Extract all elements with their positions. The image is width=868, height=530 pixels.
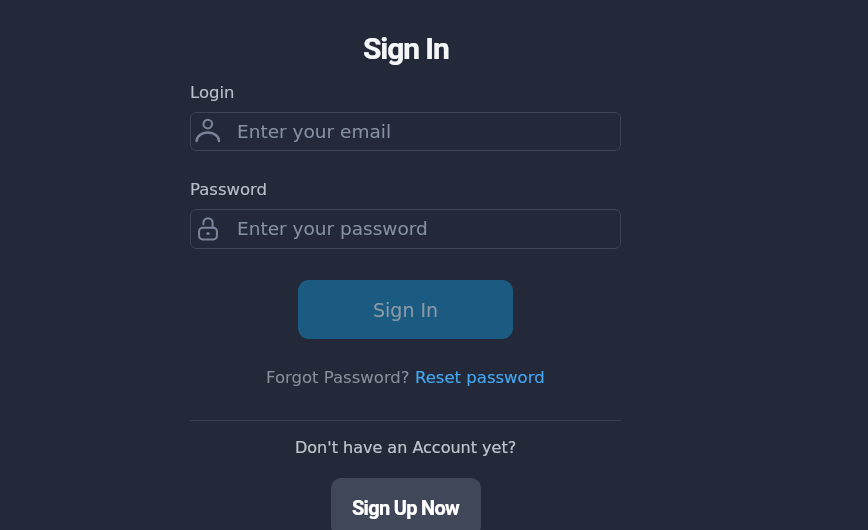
button[interactable]: Enter your password — [190, 209, 621, 249]
staticText: Login — [190, 83, 235, 102]
staticText: Enter your email — [237, 121, 392, 143]
staticText: Sign Up Now — [352, 496, 460, 519]
button[interactable]: Sign In — [298, 280, 513, 339]
button[interactable]: Reset password — [415, 368, 545, 387]
staticText: Sign In — [373, 299, 439, 321]
staticText: Sign In — [363, 31, 449, 66]
button[interactable]: Enter your email — [190, 112, 621, 151]
staticText: Forgot Password? — [266, 368, 415, 387]
staticText: Password — [190, 180, 268, 199]
button[interactable]: Sign Up Now — [331, 478, 481, 530]
staticText: Don't have an Account yet? — [295, 438, 517, 457]
staticText: Enter your password — [237, 218, 428, 240]
